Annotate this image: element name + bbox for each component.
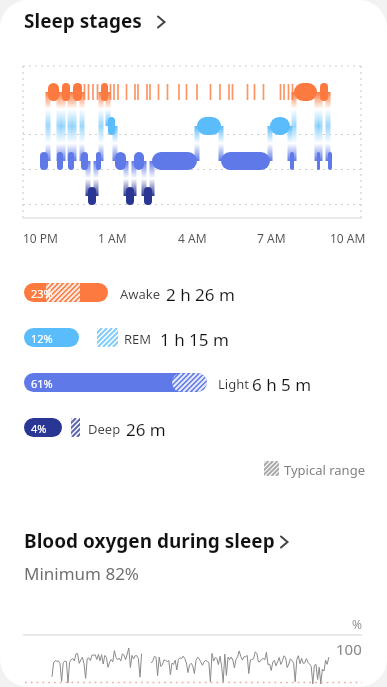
staticText: Light <box>218 375 249 393</box>
staticText: % <box>352 616 362 632</box>
button[interactable]: Blood oxygen during sleep <box>16 526 306 558</box>
staticText: 12% <box>31 331 53 346</box>
staticText: Blood oxygen during sleep <box>24 528 275 554</box>
staticText: Typical range <box>284 461 365 479</box>
staticText: 7 AM <box>257 230 286 246</box>
staticText: 1 h 15 m <box>160 328 229 351</box>
staticText: Minimum 82% <box>24 562 139 585</box>
staticText: 23% <box>31 286 53 301</box>
staticText: 26 m <box>126 418 166 441</box>
staticText: Sleep stages <box>24 8 142 34</box>
staticText: 2 h 26 m <box>166 283 235 306</box>
staticText: 10 AM <box>330 230 366 246</box>
staticText: 1 AM <box>98 230 127 246</box>
staticText: Awake <box>120 285 161 303</box>
staticText: 61% <box>31 376 53 391</box>
staticText: 100 <box>336 639 362 659</box>
staticText: 10 PM <box>23 230 58 246</box>
staticText: 4 AM <box>178 230 207 246</box>
staticText: Deep <box>88 420 121 438</box>
staticText: 4% <box>31 421 47 436</box>
staticText: REM <box>124 330 152 348</box>
button[interactable]: Sleep stages <box>16 6 186 38</box>
staticText: 6 h 5 m <box>252 373 312 396</box>
